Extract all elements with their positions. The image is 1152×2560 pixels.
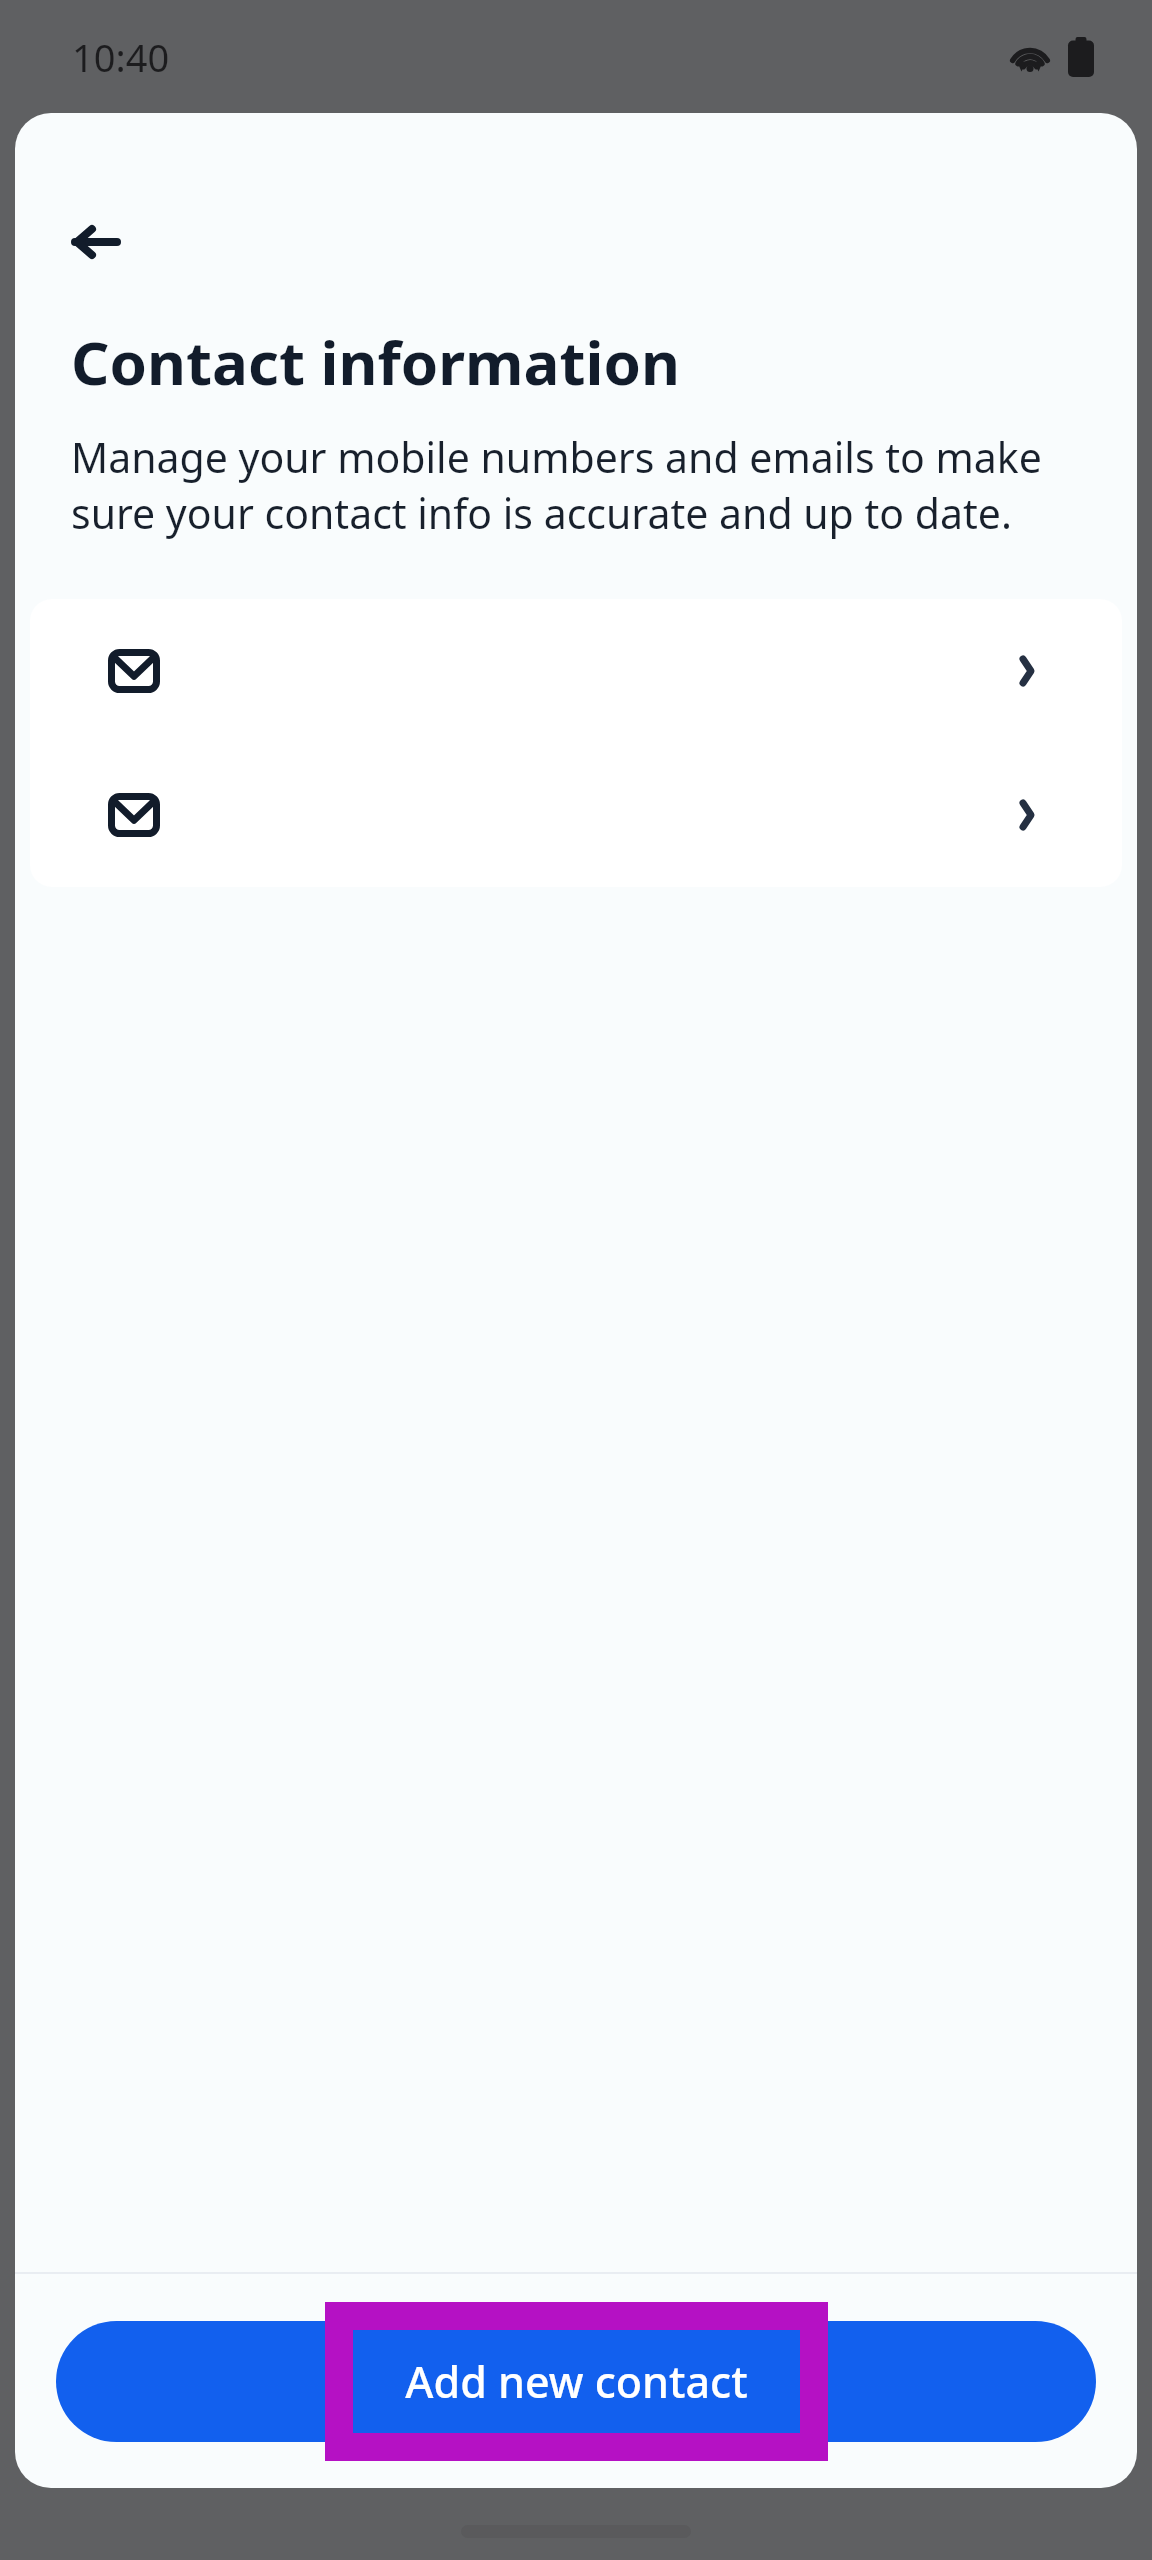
staticText: 10:40 [72,31,170,83]
button[interactable]: Email address [30,599,1122,743]
staticText: Add new contact [405,2352,748,2411]
button[interactable]: Add new contact [56,2321,1096,2442]
button[interactable]: Back [43,189,149,295]
staticText: Manage your mobile numbers and emails to… [71,429,1085,541]
button[interactable]: Email address [30,743,1122,887]
staticText: Contact information [71,321,680,403]
